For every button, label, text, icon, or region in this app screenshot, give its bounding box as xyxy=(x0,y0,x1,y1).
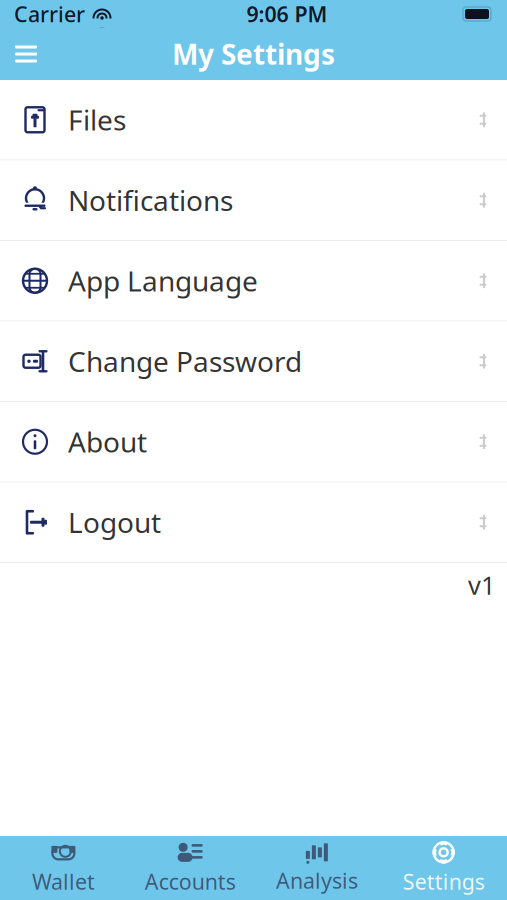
button[interactable]: Menu xyxy=(4,32,48,76)
button[interactable]: Files xyxy=(0,80,507,160)
staticText: Settings xyxy=(403,867,485,896)
staticText: v1 xyxy=(468,568,495,602)
button[interactable]: Change Password xyxy=(0,321,507,402)
staticText: Analysis xyxy=(276,866,358,895)
staticText: Files xyxy=(68,101,126,138)
staticText: My Settings xyxy=(172,35,335,73)
staticText: About xyxy=(68,423,147,460)
staticText: Change Password xyxy=(68,343,302,380)
button[interactable]: Analysis xyxy=(253,836,380,900)
button[interactable]: Settings xyxy=(380,836,507,900)
staticText: App Language xyxy=(68,262,258,299)
staticText: Logout xyxy=(68,504,161,541)
staticText: Notifications xyxy=(68,182,233,219)
staticText: Accounts xyxy=(145,867,236,896)
button[interactable]: Logout xyxy=(0,482,507,563)
staticText: Carrier xyxy=(14,0,85,28)
button[interactable]: Wallet xyxy=(0,836,127,900)
staticText: 9:06 PM xyxy=(246,0,327,28)
button[interactable]: Notifications xyxy=(0,160,507,241)
button[interactable]: App Language xyxy=(0,241,507,321)
staticText: Wallet xyxy=(32,867,95,896)
button[interactable]: Accounts xyxy=(127,836,254,900)
button[interactable]: About xyxy=(0,402,507,482)
